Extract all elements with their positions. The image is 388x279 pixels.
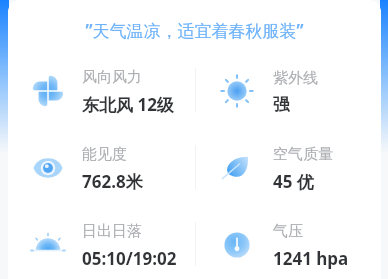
staticText: 东北风 12级 — [82, 93, 174, 116]
staticText: 能见度 — [82, 145, 127, 164]
button[interactable]: 空气质量 — [196, 129, 381, 206]
button[interactable]: 紫外线 — [196, 52, 381, 129]
button[interactable]: 能见度 — [8, 129, 195, 206]
staticText: 05:10/19:02 — [82, 247, 177, 270]
button[interactable]: 日出日落 — [8, 206, 195, 279]
staticText: 气压 — [273, 222, 303, 241]
staticText: 空气质量 — [273, 145, 333, 164]
staticText: 45 优 — [273, 170, 314, 193]
staticText: 1241 hpa — [273, 247, 349, 270]
staticText: 强 — [273, 94, 290, 115]
button[interactable]: 气压 — [196, 206, 381, 279]
button[interactable]: 风向风力 — [8, 52, 195, 129]
staticText: ”天气温凉，适宜着春秋服装” — [8, 19, 381, 42]
staticText: 紫外线 — [273, 69, 318, 88]
staticText: 日出日落 — [82, 222, 142, 241]
staticText: 风向风力 — [82, 68, 142, 87]
staticText: 762.8米 — [82, 170, 143, 193]
